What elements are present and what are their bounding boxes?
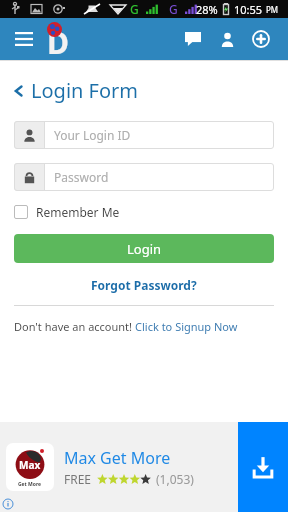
staticText: Your Login ID: [54, 127, 131, 143]
staticText: Password: [54, 169, 109, 185]
button[interactable]: Login: [14, 234, 274, 263]
staticText: (1,053): [156, 471, 194, 487]
staticText: G: [169, 1, 178, 17]
staticText: G: [130, 1, 139, 17]
staticText: Login: [127, 240, 162, 258]
staticText: Forgot Password?: [91, 277, 197, 293]
button[interactable]: Forgot Password?: [85, 276, 203, 294]
staticText: 28%: [196, 2, 218, 17]
button[interactable]: Menu: [8, 23, 40, 55]
staticText: Don't have an account!: [14, 319, 135, 334]
staticText: Max Get More: [64, 447, 171, 469]
button[interactable]: Install: [238, 422, 288, 512]
staticText: 10:55: [234, 2, 263, 17]
button[interactable]: Home: [44, 20, 86, 58]
staticText: Remember Me: [36, 204, 120, 220]
staticText: PM: [266, 4, 279, 15]
button[interactable]: Remember Me: [14, 204, 120, 220]
staticText: FREE: [64, 471, 92, 487]
button[interactable]: Click to Signup Now: [135, 319, 238, 334]
staticText: Click to Signup Now: [135, 319, 238, 334]
button[interactable]: Messages: [176, 22, 210, 56]
staticText: Get More: [18, 481, 42, 488]
button[interactable]: Password: [14, 163, 274, 191]
button[interactable]: Login Form: [14, 77, 288, 104]
staticText: Login Form: [31, 77, 139, 104]
button[interactable]: Profile: [210, 22, 244, 56]
staticText: D: [47, 22, 69, 60]
staticText: Max: [19, 458, 41, 472]
button[interactable]: Your Login ID: [14, 121, 274, 149]
button[interactable]: Add: [244, 22, 278, 56]
